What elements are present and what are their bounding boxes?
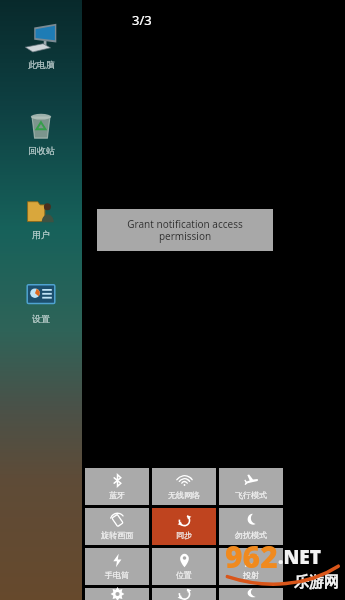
button[interactable]: 定时 [152, 588, 216, 600]
staticText: 用户 [32, 229, 50, 240]
button[interactable]: Settings [9, 280, 73, 324]
staticText: 乐游网 [294, 573, 339, 592]
staticText: 勿扰模式 [235, 530, 267, 540]
staticText: 此电脑 [28, 59, 55, 70]
button[interactable]: 同步 [152, 508, 216, 545]
staticText: 手电筒 [105, 570, 129, 580]
button[interactable]: This PC [9, 22, 73, 70]
staticText: 旋转画面 [101, 530, 133, 540]
staticText: 无线网络 [168, 490, 200, 500]
button[interactable]: 亮度 [219, 588, 283, 600]
button[interactable]: 无线网络 [152, 468, 216, 505]
staticText: 同步 [176, 530, 192, 540]
staticText: 962 [225, 536, 278, 577]
button[interactable]: Recycle Bin [9, 110, 73, 156]
staticText: .NET [278, 544, 321, 570]
button[interactable]: 位置 [152, 548, 216, 585]
staticText: 位置 [176, 570, 192, 580]
staticText: 飞行模式 [235, 490, 267, 500]
staticText: 3/3 [132, 11, 152, 29]
button[interactable]: 蓝牙 [85, 468, 149, 505]
button[interactable]: 旋转画面 [85, 508, 149, 545]
button[interactable]: Grant notification access permission [97, 209, 273, 251]
button[interactable]: 手电筒 [85, 548, 149, 585]
button[interactable]: User folder [9, 194, 73, 240]
button[interactable]: 投射 [219, 548, 283, 585]
staticText: 蓝牙 [109, 490, 125, 500]
button[interactable]: 勿扰模式 [219, 508, 283, 545]
button[interactable]: 设置 [85, 588, 149, 600]
staticText: 回收站 [28, 145, 55, 156]
staticText: 设置 [32, 313, 50, 324]
staticText: 投射 [243, 570, 259, 580]
button[interactable]: 飞行模式 [219, 468, 283, 505]
staticText: Grant notification access permission [127, 217, 243, 243]
